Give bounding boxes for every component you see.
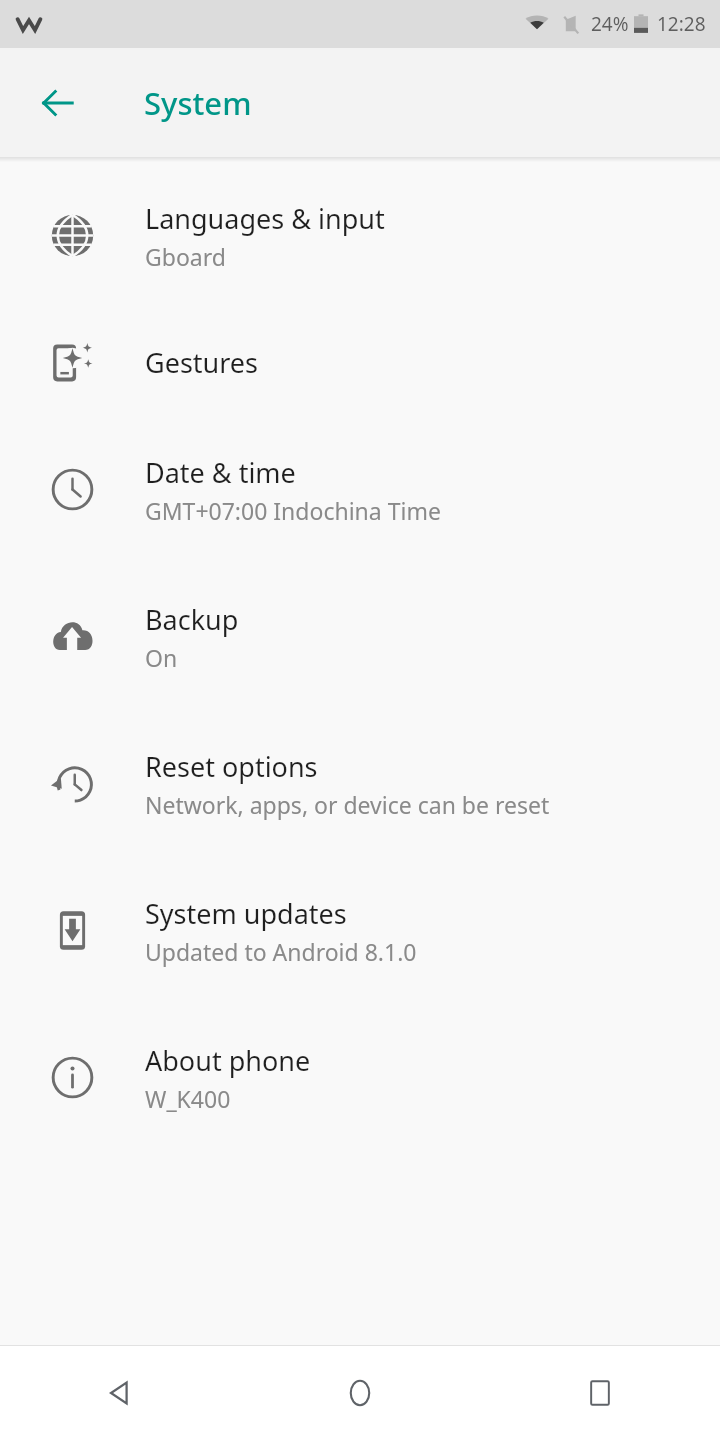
- staticText: Updated to Android 8.1.0: [145, 936, 417, 967]
- button[interactable]: Backup: [0, 563, 720, 710]
- button[interactable]: Date & time: [0, 416, 720, 563]
- button[interactable]: Reset options: [0, 710, 720, 857]
- staticText: 24%: [591, 11, 629, 37]
- staticText: Network, apps, or device can be reset: [145, 789, 550, 820]
- button[interactable]: Back: [22, 67, 94, 139]
- staticText: Gboard: [145, 241, 226, 272]
- button[interactable]: System updates: [0, 857, 720, 1004]
- staticText: Backup: [145, 601, 239, 638]
- button[interactable]: Home: [240, 1346, 480, 1440]
- button[interactable]: Languages & input: [0, 162, 720, 309]
- staticText: Reset options: [145, 748, 318, 785]
- button[interactable]: Recent apps: [480, 1346, 720, 1440]
- staticText: System: [144, 82, 252, 124]
- staticText: GMT+07:00 Indochina Time: [145, 495, 441, 526]
- staticText: System updates: [145, 895, 347, 932]
- staticText: On: [145, 642, 178, 673]
- staticText: Languages & input: [145, 200, 385, 237]
- staticText: W_K400: [145, 1083, 231, 1114]
- staticText: About phone: [145, 1042, 311, 1079]
- staticText: Date & time: [145, 454, 296, 491]
- staticText: Gestures: [145, 344, 259, 381]
- button[interactable]: Gestures: [0, 309, 720, 416]
- button[interactable]: Back: [0, 1346, 240, 1440]
- button[interactable]: About phone: [0, 1004, 720, 1151]
- staticText: 12:28: [657, 11, 706, 37]
